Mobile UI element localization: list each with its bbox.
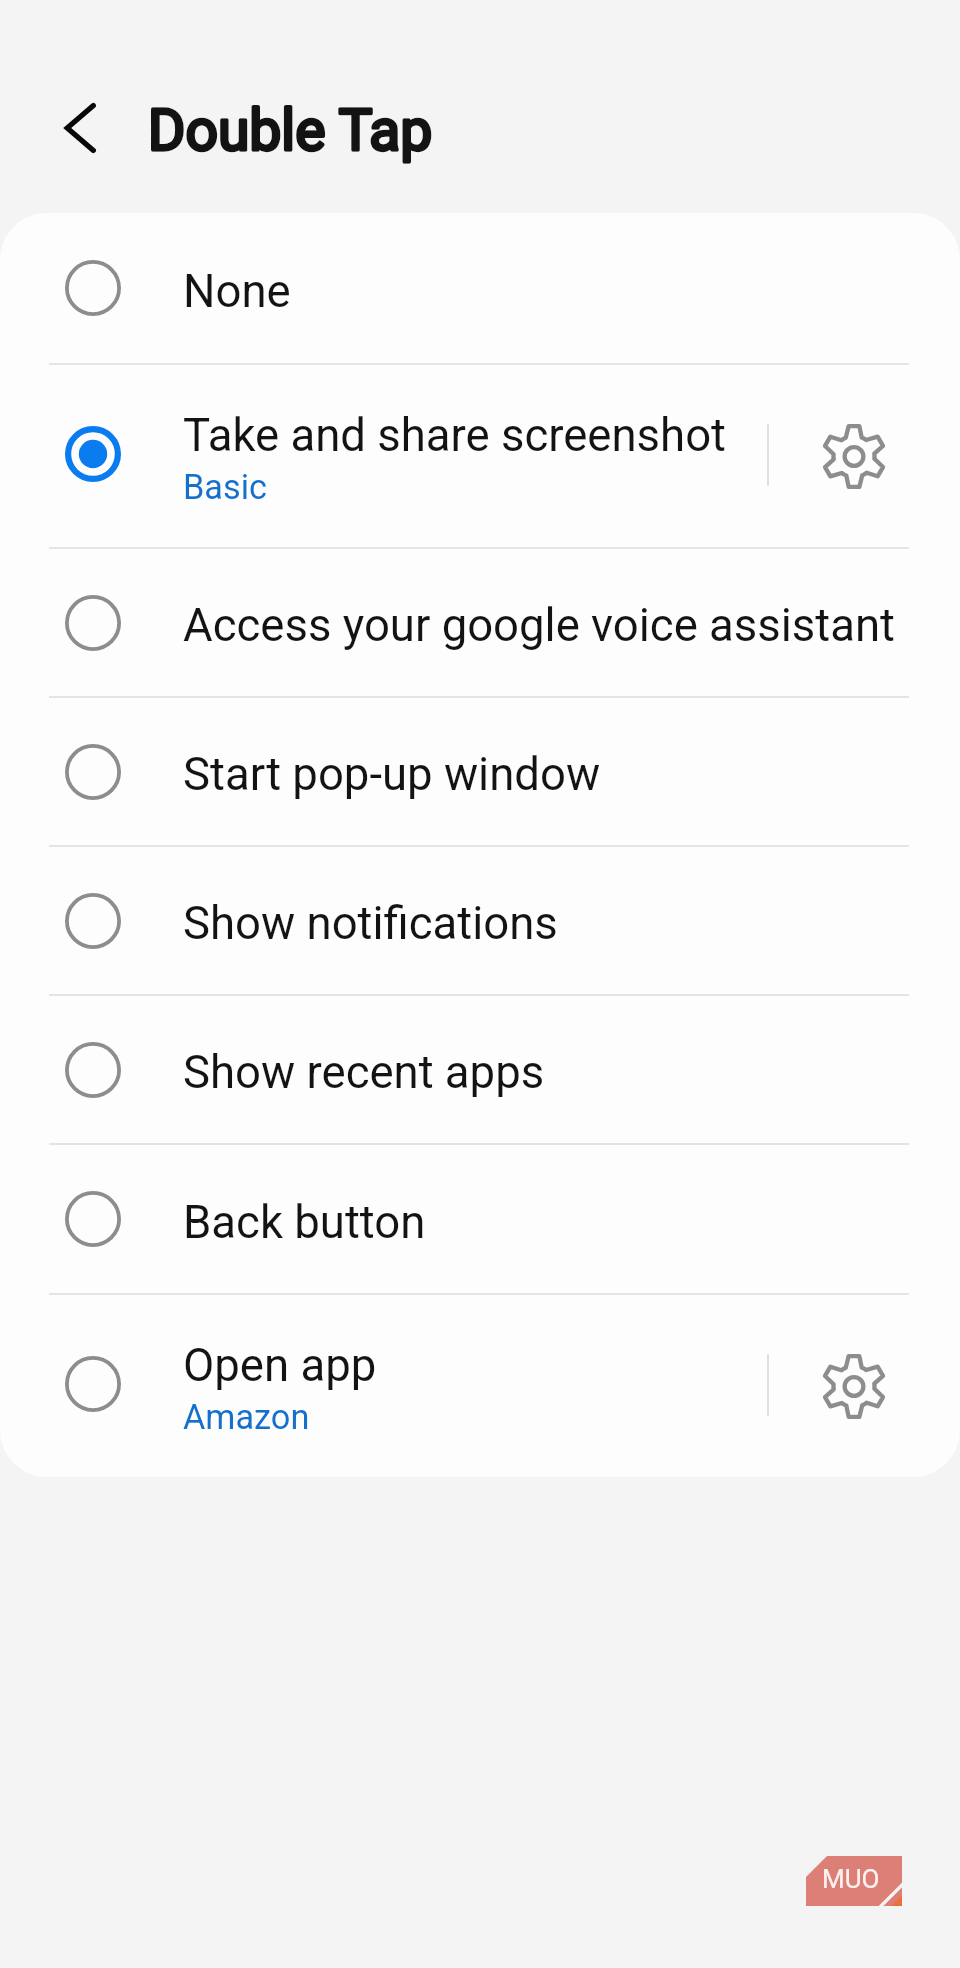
staticText: Back button <box>183 1196 426 1249</box>
button[interactable]: Access your google voice assistant <box>0 549 960 696</box>
staticText: Access your google voice assistant <box>183 599 895 652</box>
staticText: None <box>183 265 291 318</box>
button[interactable]: Settings <box>760 365 960 547</box>
staticText: Double Tap <box>148 97 433 164</box>
staticText: Take and share screenshot <box>183 409 727 462</box>
staticText: Show recent apps <box>183 1046 545 1099</box>
button[interactable]: Back <box>48 96 112 160</box>
staticText: Amazon <box>183 1397 310 1437</box>
button[interactable]: Show notifications <box>0 847 960 994</box>
button[interactable]: Take and share screenshot <box>0 365 960 547</box>
button[interactable]: Show recent apps <box>0 996 960 1143</box>
staticText: MUO <box>822 1864 880 1894</box>
staticText: Double Tap <box>148 97 433 164</box>
button[interactable]: Settings <box>760 1295 960 1477</box>
staticText: Start pop-up window <box>183 748 601 801</box>
staticText: Show notifications <box>183 897 558 950</box>
button[interactable]: Back button <box>0 1145 960 1293</box>
staticText: Open app <box>183 1339 377 1392</box>
button[interactable]: Open app <box>0 1295 960 1477</box>
button[interactable]: None <box>0 213 960 363</box>
button[interactable]: Start pop-up window <box>0 698 960 845</box>
staticText: Basic <box>183 467 268 507</box>
